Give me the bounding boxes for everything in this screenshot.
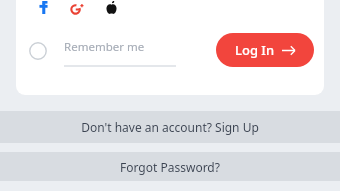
button[interactable]: Sign in with Google xyxy=(64,0,90,14)
button[interactable]: Remember me xyxy=(64,32,176,67)
button[interactable]: Log In xyxy=(216,33,314,67)
button[interactable]: Sign in with Facebook xyxy=(30,0,56,14)
button[interactable]: Sign in with Apple xyxy=(98,0,124,14)
button[interactable]: Forgot Password? xyxy=(0,152,340,181)
button[interactable]: Don't have an account? Sign Up xyxy=(0,111,340,143)
staticText: Remember me xyxy=(64,39,145,55)
button[interactable]: Remember me checkbox xyxy=(24,37,52,65)
staticText: Forgot Password? xyxy=(120,159,220,175)
staticText: Log In xyxy=(235,41,275,59)
staticText: Don't have an account? Sign Up xyxy=(81,119,259,135)
